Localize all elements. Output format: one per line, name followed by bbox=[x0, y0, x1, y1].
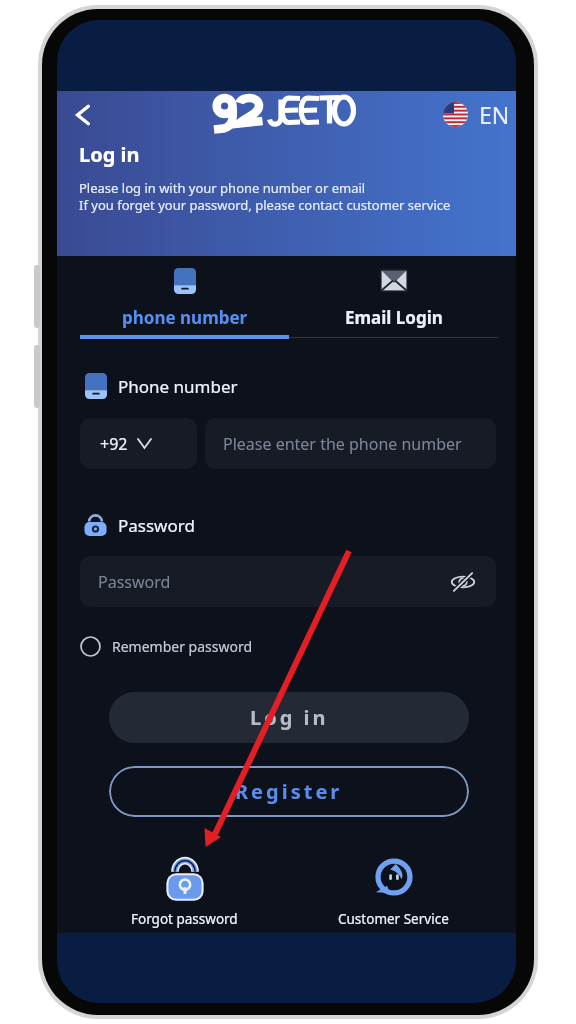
button[interactable]: Password bbox=[80, 556, 496, 607]
staticText: Customer Service bbox=[338, 910, 449, 928]
button[interactable]: Please enter the phone number bbox=[205, 418, 496, 469]
button[interactable]: Email Login bbox=[289, 256, 498, 329]
staticText: phone number bbox=[122, 306, 248, 329]
button[interactable]: Show password bbox=[448, 567, 478, 597]
button[interactable]: +92 bbox=[80, 418, 197, 469]
button[interactable]: Forgot password bbox=[80, 858, 289, 928]
button[interactable]: phone number bbox=[80, 256, 289, 329]
staticText: Please enter the phone number bbox=[223, 433, 462, 455]
button[interactable]: Remember password bbox=[80, 636, 253, 657]
staticText: Remember password bbox=[112, 637, 253, 656]
staticText: Forgot password bbox=[131, 910, 238, 928]
button[interactable]: Customer Service bbox=[289, 858, 498, 928]
button[interactable]: EN bbox=[443, 99, 510, 130]
staticText: Email Login bbox=[345, 306, 443, 329]
button[interactable]: Register bbox=[109, 766, 469, 817]
staticText: +92 bbox=[100, 433, 128, 455]
staticText: Log in bbox=[250, 704, 329, 731]
staticText: Log in bbox=[79, 141, 140, 168]
staticText: EN bbox=[479, 99, 510, 130]
staticText: Phone number bbox=[118, 375, 238, 398]
staticText: Register bbox=[235, 778, 343, 805]
staticText: Password bbox=[98, 571, 171, 593]
staticText: If you forget your password, please cont… bbox=[79, 196, 451, 214]
button[interactable]: Log in bbox=[109, 692, 469, 743]
staticText: Password bbox=[118, 514, 195, 537]
button[interactable]: Back bbox=[65, 98, 99, 132]
staticText: Please log in with your phone number or … bbox=[79, 179, 366, 197]
